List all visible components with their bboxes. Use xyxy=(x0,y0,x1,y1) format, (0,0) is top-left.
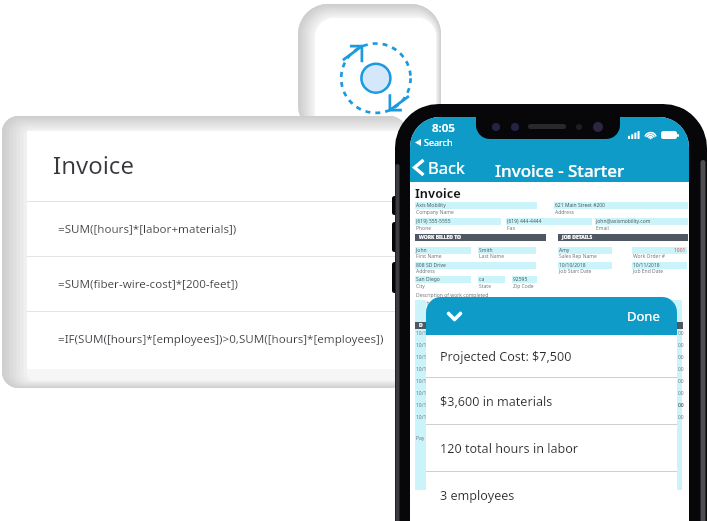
staticText: Pay xyxy=(416,435,425,442)
staticText: WORK BILLED TO xyxy=(419,234,462,241)
staticText: Address xyxy=(416,268,435,275)
staticText: 10/1 xyxy=(416,366,427,373)
staticText: Invoice - Starter xyxy=(495,159,625,182)
staticText: Projected Cost: $7,500 xyxy=(440,348,572,365)
staticText: Smith xyxy=(479,247,493,254)
staticText: 00 xyxy=(678,402,684,409)
button[interactable]: Done xyxy=(611,297,677,335)
button[interactable]: $3,600 in materials xyxy=(426,378,677,424)
staticText: JOB DETAILS xyxy=(562,234,593,241)
staticText: ca xyxy=(479,276,485,283)
staticText: Email xyxy=(596,225,609,232)
staticText: 621 Main Street #200 xyxy=(555,202,605,209)
staticText: 3 employees xyxy=(440,487,515,504)
button[interactable]: 3 employees xyxy=(426,472,677,519)
staticText: 00 xyxy=(678,378,684,385)
staticText: Search xyxy=(424,136,453,148)
staticText: D xyxy=(419,322,423,329)
staticText: Last Name xyxy=(479,253,505,260)
staticText: Done xyxy=(627,307,660,325)
staticText: 00 xyxy=(678,414,684,421)
staticText: 10/1 xyxy=(416,390,427,397)
staticText: 00 xyxy=(678,354,684,361)
staticText: 10/1 xyxy=(416,342,427,349)
staticText: Purchase and install xyxy=(416,300,464,307)
staticText: Amy xyxy=(559,247,570,254)
staticText: Address xyxy=(555,209,574,216)
staticText: 00 xyxy=(678,390,684,397)
staticText: 120 total hours in labor xyxy=(440,440,579,457)
staticText: Zip Code xyxy=(513,283,534,290)
staticText: Invoice xyxy=(415,185,461,202)
staticText: various installations xyxy=(416,314,463,321)
staticText: 10/1 xyxy=(416,414,427,421)
staticText: Sales Rep Name xyxy=(559,253,597,260)
button[interactable]: =IF(SUM([hours]*[employees])>0,SUM([hour… xyxy=(27,312,419,366)
staticText: Company Name xyxy=(416,209,454,216)
staticText: 00 xyxy=(678,330,684,337)
staticText: John xyxy=(416,247,427,254)
staticText: State xyxy=(479,283,491,290)
staticText: Job End Date xyxy=(633,268,664,275)
staticText: 00 xyxy=(678,402,684,409)
staticText: =SUM(fiber-wire-cost]*[200-feet]) xyxy=(58,276,239,292)
staticText: =SUM([hours]*[labor+materials]) xyxy=(58,221,237,237)
staticText: john@axismobility.com xyxy=(596,218,651,225)
button[interactable]: =SUM([hours]*[labor+materials]) xyxy=(27,202,419,256)
staticText: 00 xyxy=(678,342,684,349)
staticText: First Name xyxy=(416,253,442,260)
staticText: San Diego xyxy=(416,276,440,283)
button[interactable]: Back xyxy=(414,156,465,178)
staticText: Work Order # xyxy=(633,253,665,260)
button[interactable]: Search xyxy=(415,136,453,148)
button[interactable]: Projected Cost: $7,500 xyxy=(426,335,677,377)
button[interactable]: =SUM(fiber-wire-cost]*[200-feet]) xyxy=(27,257,419,311)
button[interactable]: Sync xyxy=(315,18,436,133)
staticText: =IF(SUM([hours]*[employees])>0,SUM([hour… xyxy=(58,331,384,347)
button[interactable]: Collapse xyxy=(433,297,475,335)
staticText: $3,600 in materials xyxy=(440,393,553,410)
staticText: Description of work completed xyxy=(416,292,489,299)
staticText: 1001 xyxy=(674,247,686,254)
staticText: 92595 xyxy=(513,276,528,283)
staticText: 10/1 xyxy=(416,330,427,337)
staticText: new fiber wire for xyxy=(416,307,458,314)
staticText: 10/1 xyxy=(416,402,427,409)
staticText: Invoice xyxy=(53,148,134,181)
staticText: City xyxy=(416,283,425,290)
staticText: Fax xyxy=(507,225,516,232)
staticText: (619) 444-4444 xyxy=(507,218,542,225)
staticText: 10/1 xyxy=(416,354,427,361)
staticText: Job Start Date xyxy=(559,268,592,275)
staticText: 00 xyxy=(678,366,684,373)
staticText: 808 SD Drive xyxy=(416,262,446,269)
staticText: 10/10/2018 xyxy=(559,262,586,269)
staticText: Phone xyxy=(416,225,432,232)
button[interactable]: 120 total hours in labor xyxy=(426,425,677,471)
staticText: Back xyxy=(428,156,465,178)
staticText: 8:05 xyxy=(432,120,455,136)
staticText: 10/1 xyxy=(416,378,427,385)
staticText: Axis Mobility xyxy=(416,202,446,209)
staticText: 10/11/2018 xyxy=(633,262,660,269)
staticText: (619) 555-5555 xyxy=(416,218,451,225)
